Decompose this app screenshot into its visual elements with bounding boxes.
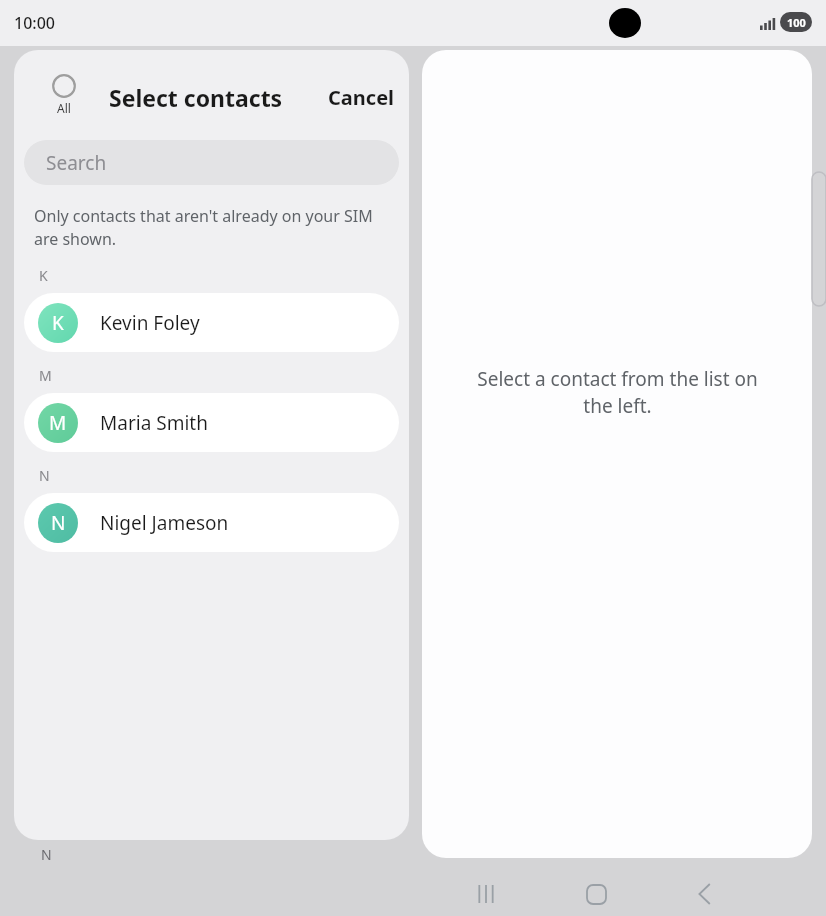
button[interactable]: All [48,70,80,120]
button[interactable]: Cancel [320,78,403,117]
staticText: N [41,845,52,864]
staticText: M [39,366,52,385]
staticText: All [57,100,71,116]
staticText: Select a contact from the list on the le… [477,366,758,419]
staticText: 10:00 [14,12,55,34]
staticText: Search [46,150,107,176]
button[interactable]: Back [681,870,729,916]
staticText: Nigel Jameson [100,510,229,536]
staticText: Maria Smith [100,410,208,436]
button[interactable]: N [24,493,399,552]
button[interactable]: Recents [462,870,510,916]
staticText: M [49,410,67,436]
staticText: N [39,466,50,485]
staticText: Kevin Foley [100,310,200,336]
staticText: Only contacts that aren't already on you… [34,205,373,250]
staticText: Cancel [328,84,395,111]
staticText: Select contacts [109,82,283,113]
staticText: K [39,266,48,285]
staticText: 100 [787,15,806,30]
button[interactable]: M [24,393,399,452]
staticText: K [52,310,64,336]
button[interactable]: Home [572,870,620,916]
staticText: N [51,510,66,536]
button[interactable]: K [24,293,399,352]
button[interactable]: Search [24,140,399,185]
